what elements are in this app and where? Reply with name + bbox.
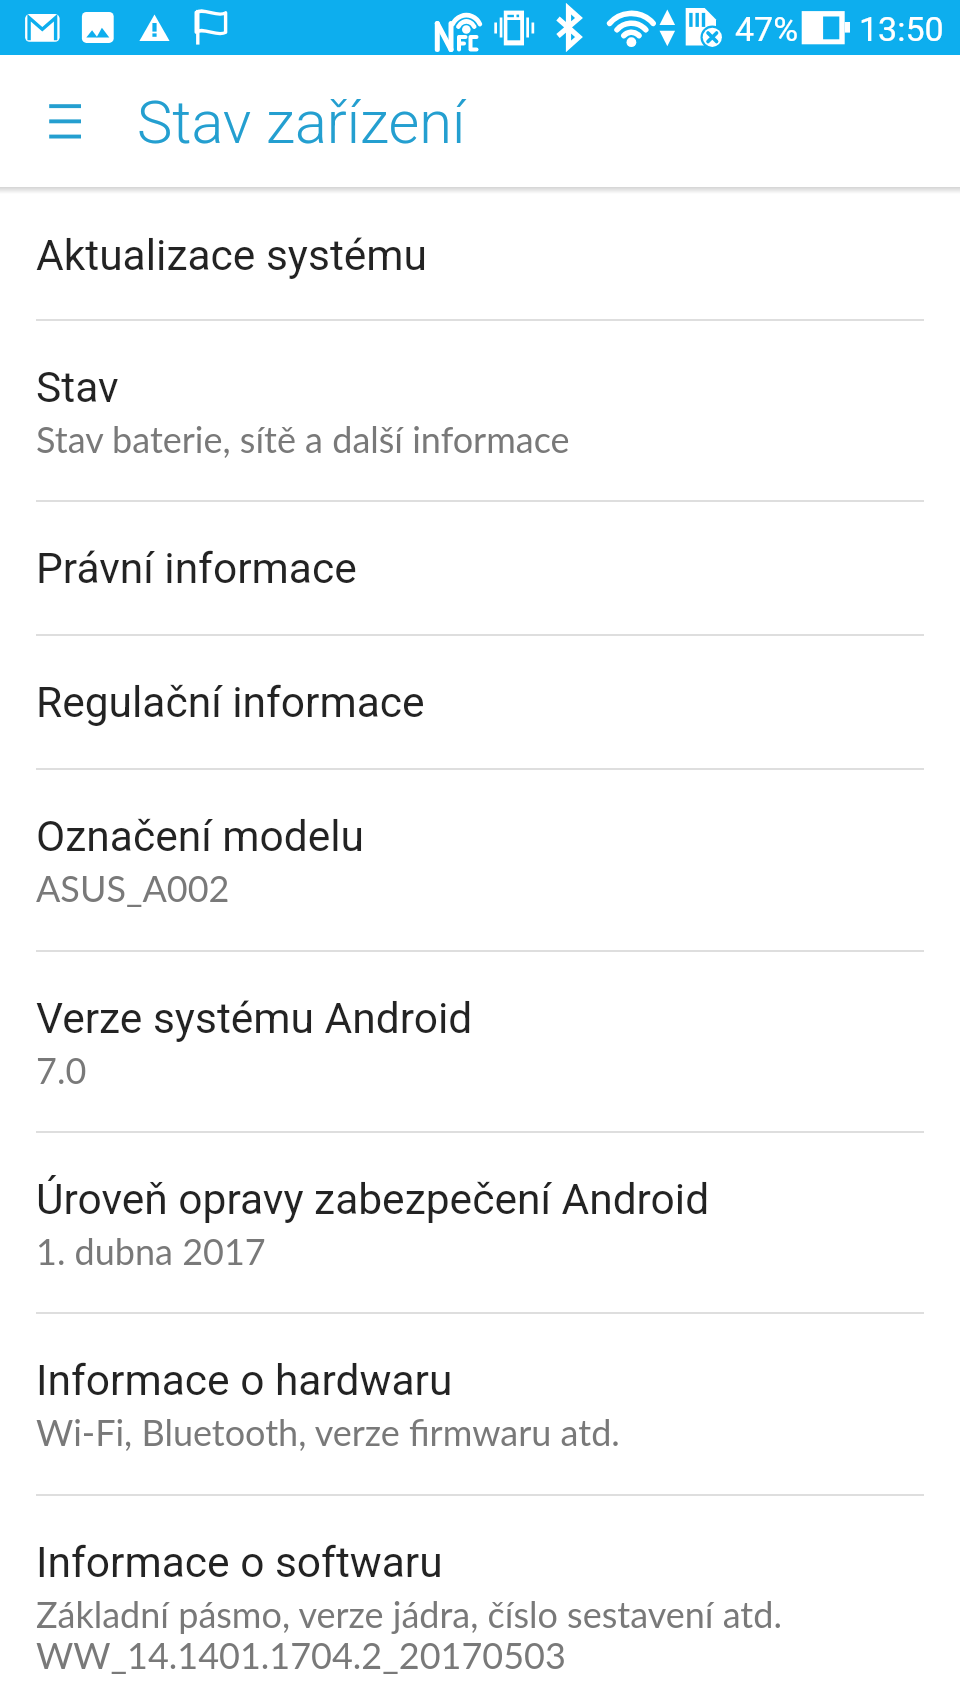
staticText: 13:50 — [859, 9, 944, 49]
staticText: Stav — [36, 363, 119, 413]
staticText: Stav baterie, sítě a další informace — [36, 417, 570, 460]
button[interactable]: Právní informace — [0, 500, 960, 634]
button[interactable]: Informace o softwaru — [0, 1494, 960, 1707]
staticText: Označení modelu — [36, 812, 365, 862]
staticText: Regulační informace — [36, 678, 425, 728]
staticText: Informace o softwaru — [36, 1538, 443, 1588]
button[interactable]: Stav — [0, 319, 960, 500]
staticText: Úroveň opravy zabezpečení Android — [36, 1175, 710, 1225]
button[interactable]: Úroveň opravy zabezpečení Android — [0, 1131, 960, 1312]
button[interactable]: Menu — [16, 55, 114, 187]
staticText: Právní informace — [36, 544, 357, 594]
staticText: Informace o hardwaru — [36, 1356, 453, 1406]
staticText: Verze systému Android — [36, 994, 473, 1044]
staticText: Wi-Fi, Bluetooth, verze firmwaru atd. — [36, 1410, 620, 1453]
button[interactable]: Označení modelu — [0, 768, 960, 950]
staticText: Stav zařízení — [137, 88, 466, 158]
staticText: 47% — [735, 9, 799, 49]
button[interactable]: Verze systému Android — [0, 950, 960, 1131]
staticText: Aktualizace systému — [36, 231, 428, 281]
button[interactable]: Regulační informace — [0, 634, 960, 768]
staticText: Základní pásmo, verze jádra, číslo sesta… — [36, 1592, 782, 1635]
button[interactable]: Aktualizace systému — [0, 187, 960, 319]
staticText: WW_14.1401.1704.2_20170503 — [36, 1633, 566, 1676]
button[interactable]: Informace o hardwaru — [0, 1312, 960, 1494]
staticText: 1. dubna 2017 — [36, 1229, 266, 1272]
staticText: 7.0 — [36, 1048, 87, 1091]
staticText: ASUS_A002 — [36, 866, 230, 909]
